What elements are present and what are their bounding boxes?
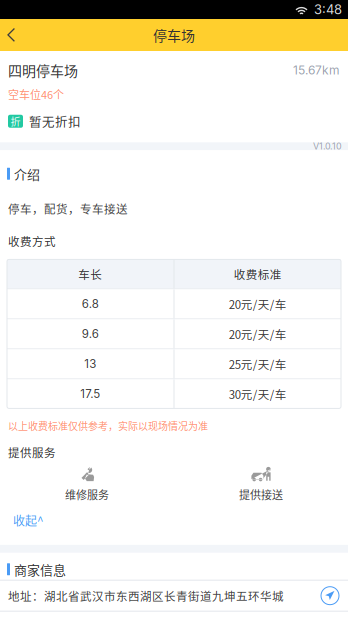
staticText: 维修服务	[65, 487, 109, 502]
staticText: 四明停车场	[8, 60, 78, 80]
button[interactable]: 收起^	[0, 502, 348, 545]
button[interactable]: 返回	[0, 19, 27, 50]
staticText: 9.6	[82, 327, 99, 341]
staticText: 收费标准	[234, 266, 282, 282]
button[interactable]: 维修服务	[0, 467, 174, 502]
staticText: 介绍	[14, 164, 40, 183]
staticText: 提供接送	[239, 487, 283, 502]
staticText: 车长	[78, 266, 102, 282]
button[interactable]: 提供接送	[174, 467, 348, 502]
staticText: 停车场	[153, 25, 195, 45]
staticText: 收起^	[13, 511, 44, 529]
button[interactable]: 导航	[317, 583, 343, 609]
staticText: 6.8	[82, 297, 99, 311]
staticText: 空车位46个	[8, 86, 64, 102]
staticText: 提供服务	[8, 444, 56, 461]
staticText: 13	[84, 357, 96, 371]
staticText: 停车，配货，专车接送	[8, 200, 128, 217]
staticText: 商家信息	[14, 560, 66, 579]
staticText: 17.5	[80, 387, 100, 401]
staticText: 30元/天/车	[229, 386, 287, 402]
staticText: 收费方式	[8, 233, 56, 249]
staticText: 20元/天/车	[229, 326, 287, 342]
staticText: V1.0.10	[313, 141, 342, 152]
staticText: 20元/天/车	[229, 296, 287, 312]
staticText: 3:48	[314, 2, 342, 17]
staticText: 25元/天/车	[229, 356, 287, 372]
staticText: 以上收费标准仅供参考，实际以现场情况为准	[8, 418, 208, 433]
staticText: 15.67km	[293, 63, 340, 77]
staticText: 折	[10, 114, 20, 128]
staticText: 地址：湖北省武汉市东西湖区长青街道九坤五环华城	[8, 587, 284, 604]
staticText: 暂无折扣	[29, 112, 81, 130]
